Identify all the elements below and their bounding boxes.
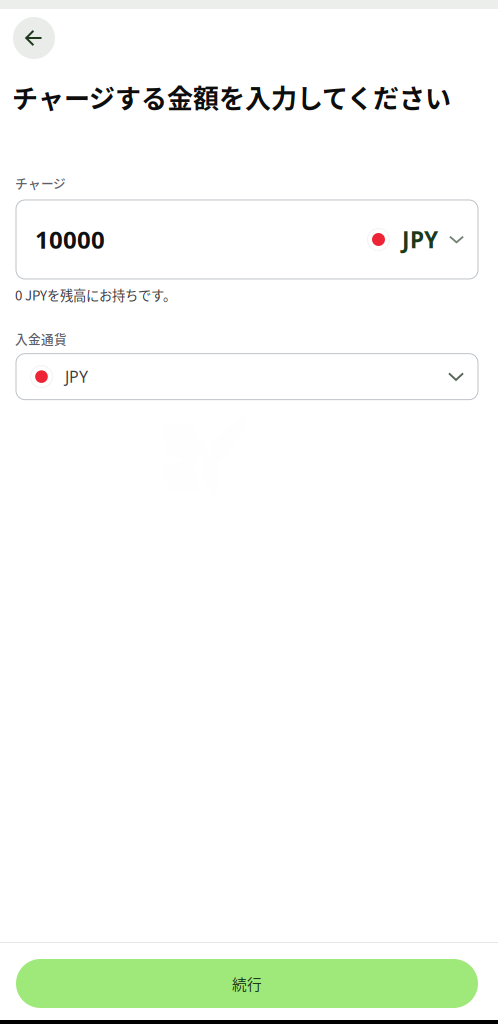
staticText: JPY <box>65 366 88 387</box>
staticText: 0 JPYを残高にお持ちです。 <box>15 285 176 304</box>
staticText: チャージ <box>15 174 66 192</box>
button[interactable]: JPY <box>367 224 464 254</box>
staticText: 入金通貨 <box>15 329 67 348</box>
staticText: 続行 <box>232 973 262 994</box>
button[interactable]: 続行 <box>0 959 498 1008</box>
button[interactable]: JPY <box>0 354 498 400</box>
staticText: JPY <box>402 224 438 254</box>
staticText: チャージする金額を入力してください <box>12 78 451 116</box>
staticText: 10000 <box>35 224 105 255</box>
button[interactable]: Back <box>13 17 55 59</box>
